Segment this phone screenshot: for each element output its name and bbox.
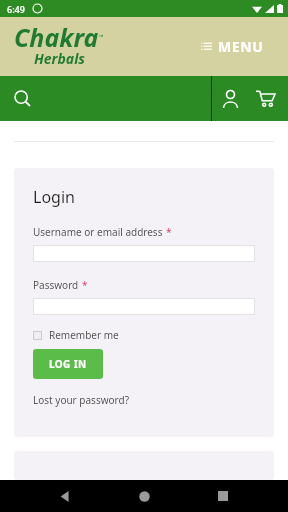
staticText: MENU (218, 37, 264, 56)
button[interactable]: Lost your password? (33, 393, 130, 407)
staticText: LOG IN (49, 357, 87, 371)
button[interactable]: Account (216, 84, 245, 113)
button[interactable]: Back (52, 483, 79, 510)
staticText: Password (33, 278, 79, 292)
button[interactable]: MENU (195, 31, 270, 62)
staticText: Login (33, 186, 75, 208)
button[interactable] (33, 245, 255, 262)
button[interactable]: Cart (251, 84, 280, 113)
staticText: Chakra (14, 20, 99, 54)
button[interactable]: Search (8, 84, 37, 113)
staticText: * (166, 225, 172, 239)
button[interactable]: Recents (210, 483, 236, 509)
staticText: ™ (99, 33, 104, 41)
staticText: 6:49 (7, 3, 25, 15)
button[interactable]: LOG IN (33, 349, 103, 379)
staticText: Username or email address (33, 225, 163, 239)
button[interactable]: Home (131, 483, 158, 510)
button[interactable]: Remember me (33, 328, 119, 342)
button[interactable] (33, 298, 255, 315)
staticText: * (82, 278, 88, 292)
staticText: Remember me (49, 328, 119, 342)
staticText: Herbals (34, 49, 85, 68)
